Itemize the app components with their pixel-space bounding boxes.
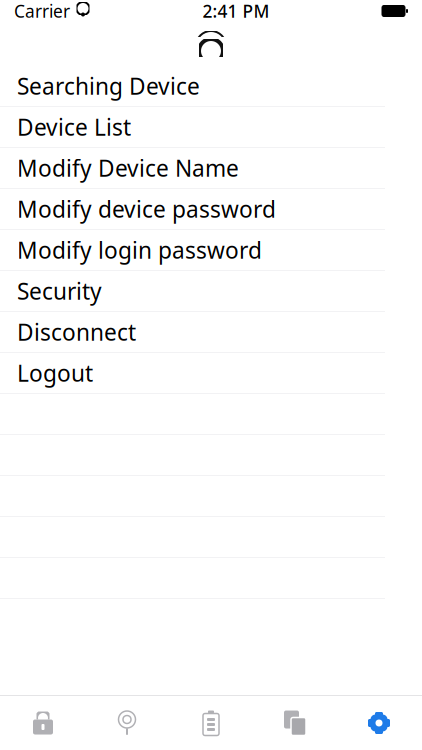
staticText: Logout — [17, 358, 93, 388]
button[interactable]: Location — [85, 696, 169, 750]
staticText: 2:41 PM — [202, 0, 269, 22]
button[interactable]: Settings — [337, 696, 421, 750]
button[interactable]: Battery — [169, 696, 253, 750]
staticText: Modify Device Name — [17, 153, 239, 183]
button[interactable]: Modify login password — [0, 230, 422, 271]
staticText: Modify device password — [17, 194, 276, 224]
staticText: Carrier — [14, 0, 70, 22]
staticText: Security — [17, 276, 102, 306]
button[interactable]: Modify Device Name — [0, 148, 422, 189]
button[interactable]: Searching Device — [0, 66, 422, 107]
staticText: Device List — [17, 112, 131, 142]
staticText: Searching Device — [17, 71, 200, 101]
button[interactable]: Disconnect — [0, 312, 422, 353]
button[interactable]: Lock — [1, 696, 85, 750]
button[interactable]: Logout — [0, 353, 422, 394]
button[interactable]: Files — [253, 696, 337, 750]
button[interactable]: Modify device password — [0, 189, 422, 230]
button[interactable]: Security — [0, 271, 422, 312]
staticText: Modify login password — [17, 235, 262, 265]
button[interactable]: Device List — [0, 107, 422, 148]
staticText: Disconnect — [17, 317, 136, 347]
